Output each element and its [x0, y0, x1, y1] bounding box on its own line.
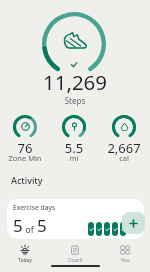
- button[interactable]: Add activity: [122, 212, 145, 234]
- staticText: 76: [0, 139, 50, 157]
- button[interactable]: Exercise days: [7, 199, 144, 239]
- staticText: cal: [99, 153, 149, 163]
- staticText: Today: [18, 257, 32, 264]
- staticText: of: [23, 223, 37, 235]
- staticText: 5: [37, 214, 47, 237]
- button[interactable]: You: [100, 244, 150, 264]
- staticText: 5: [13, 214, 23, 237]
- button[interactable]: Today: [0, 244, 50, 264]
- staticText: 2,667: [99, 139, 149, 157]
- staticText: Activity: [11, 174, 43, 186]
- staticText: Steps: [0, 95, 150, 106]
- staticText: Zone Min: [0, 153, 50, 163]
- staticText: mi: [49, 153, 99, 163]
- button[interactable]: Coach: [50, 244, 100, 264]
- staticText: Coach: [68, 257, 83, 264]
- staticText: 11,269: [0, 68, 150, 96]
- staticText: 5.5: [49, 139, 99, 157]
- staticText: You: [121, 257, 130, 264]
- staticText: Exercise days: [13, 203, 56, 212]
